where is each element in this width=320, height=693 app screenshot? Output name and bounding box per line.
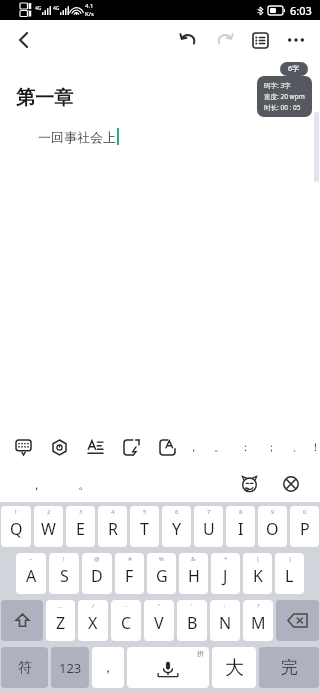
staticText: 2: [47, 508, 51, 516]
button[interactable]: ，: [12, 467, 60, 501]
button[interactable]: %: [147, 553, 176, 594]
button[interactable]: ?: [243, 600, 273, 641]
staticText: 。: [78, 476, 91, 492]
button[interactable]: Back: [6, 22, 42, 58]
button[interactable]: -: [111, 600, 141, 641]
button[interactable]: 123: [51, 647, 89, 688]
button[interactable]: ): [275, 553, 304, 594]
button[interactable]: 。: [206, 428, 232, 465]
button[interactable]: Settings: [46, 434, 72, 460]
button[interactable]: 、: [284, 428, 310, 465]
staticText: N: [219, 612, 232, 634]
staticText: 大: [225, 656, 244, 680]
staticText: 。: [214, 440, 225, 454]
button[interactable]: Backspace: [276, 600, 319, 641]
button[interactable]: #: [115, 553, 144, 594]
button[interactable]: Outline: [242, 22, 278, 58]
button[interactable]: Undo: [170, 22, 206, 58]
button[interactable]: Keyboard layout: [10, 434, 36, 460]
staticText: 9: [271, 508, 275, 516]
staticText: E: [76, 518, 85, 540]
staticText: Q: [10, 518, 23, 540]
staticText: A: [26, 565, 37, 587]
button[interactable]: &: [179, 553, 208, 594]
button[interactable]: 3: [66, 506, 95, 547]
staticText: K: [253, 565, 263, 587]
staticText: G: [156, 565, 168, 587]
staticText: B: [187, 612, 198, 634]
button[interactable]: More options: [278, 22, 314, 58]
button[interactable]: Clipboard: [118, 434, 144, 460]
staticText: 6字: [288, 64, 300, 74]
button[interactable]: ': [177, 600, 207, 641]
button[interactable]: 2: [34, 506, 63, 547]
staticText: 一回事社会上: [38, 129, 116, 145]
staticText: @: [94, 555, 100, 563]
button[interactable]: Translate: [154, 434, 180, 460]
button[interactable]: 9: [258, 506, 287, 547]
button[interactable]: ；: [258, 428, 284, 465]
button[interactable]: 码字: 3字: [257, 76, 312, 117]
button[interactable]: /: [78, 600, 108, 641]
button[interactable]: …: [46, 600, 75, 641]
staticText: 3: [79, 508, 83, 516]
button[interactable]: 7: [194, 506, 223, 547]
staticText: 4.1: [85, 2, 94, 10]
button[interactable]: ，: [180, 428, 206, 465]
button[interactable]: ": [144, 600, 174, 641]
staticText: 0: [303, 508, 307, 516]
button[interactable]: ：: [232, 428, 258, 465]
button[interactable]: Emoji: [234, 469, 264, 499]
staticText: I: [238, 518, 244, 540]
staticText: …: [58, 602, 63, 610]
staticText: U: [203, 518, 215, 540]
button[interactable]: Space, voice input: [127, 647, 209, 688]
button[interactable]: @: [82, 553, 112, 594]
button[interactable]: Redo: [206, 22, 242, 58]
staticText: *: [224, 555, 228, 563]
staticText: ，: [101, 659, 115, 677]
button[interactable]: ~: [16, 553, 46, 594]
button[interactable]: Text format: [82, 434, 108, 460]
staticText: (: [257, 555, 259, 563]
staticText: /: [92, 602, 95, 610]
button[interactable]: 8: [226, 506, 255, 547]
button[interactable]: 符: [1, 647, 48, 688]
staticText: Z: [56, 612, 66, 634]
button[interactable]: 0: [290, 506, 319, 547]
staticText: X: [88, 612, 98, 634]
staticText: M: [251, 612, 266, 634]
staticText: W: [41, 518, 56, 540]
button[interactable]: 完: [259, 647, 319, 688]
button[interactable]: ，: [92, 647, 124, 688]
staticText: -: [125, 602, 127, 610]
staticText: ，: [30, 476, 43, 492]
staticText: J: [223, 565, 228, 587]
staticText: ': [191, 602, 193, 610]
staticText: 符: [18, 659, 32, 677]
staticText: ：: [240, 440, 251, 454]
button[interactable]: 5: [130, 506, 159, 547]
button[interactable]: 大: [212, 647, 256, 688]
staticText: O: [266, 518, 279, 540]
button[interactable]: Shift: [1, 600, 43, 641]
button[interactable]: 1: [1, 506, 31, 547]
staticText: R: [108, 518, 118, 540]
staticText: 速度: 20 wpm: [264, 92, 305, 101]
staticText: &: [191, 555, 196, 563]
button[interactable]: 4: [98, 506, 127, 547]
button[interactable]: :: [210, 600, 240, 641]
staticText: ": [158, 602, 161, 610]
staticText: #: [128, 555, 132, 563]
button[interactable]: 6: [162, 506, 191, 547]
button[interactable]: Close keyboard: [276, 469, 306, 499]
staticText: T: [140, 518, 149, 540]
staticText: C: [121, 612, 132, 634]
staticText: Y: [172, 518, 182, 540]
button[interactable]: (: [243, 553, 272, 594]
button[interactable]: *: [211, 553, 240, 594]
staticText: 4: [111, 508, 115, 516]
button[interactable]: !: [49, 553, 79, 594]
button[interactable]: 。: [60, 467, 108, 501]
button[interactable]: 6字: [280, 62, 308, 76]
